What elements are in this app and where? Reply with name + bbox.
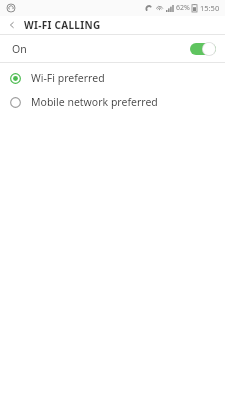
button[interactable]: On <box>0 35 225 62</box>
button[interactable]: Wi-Fi preferred <box>0 66 225 90</box>
staticText: Mobile network preferred <box>31 95 158 109</box>
staticText: WI-FI CALLING <box>24 18 101 32</box>
button[interactable]: Back <box>0 16 24 34</box>
staticText: On <box>12 42 190 56</box>
button[interactable]: Mobile network preferred <box>0 90 225 114</box>
staticText: Wi-Fi preferred <box>31 71 105 85</box>
staticText: 62% <box>176 3 190 13</box>
staticText: 15:50 <box>200 3 220 13</box>
